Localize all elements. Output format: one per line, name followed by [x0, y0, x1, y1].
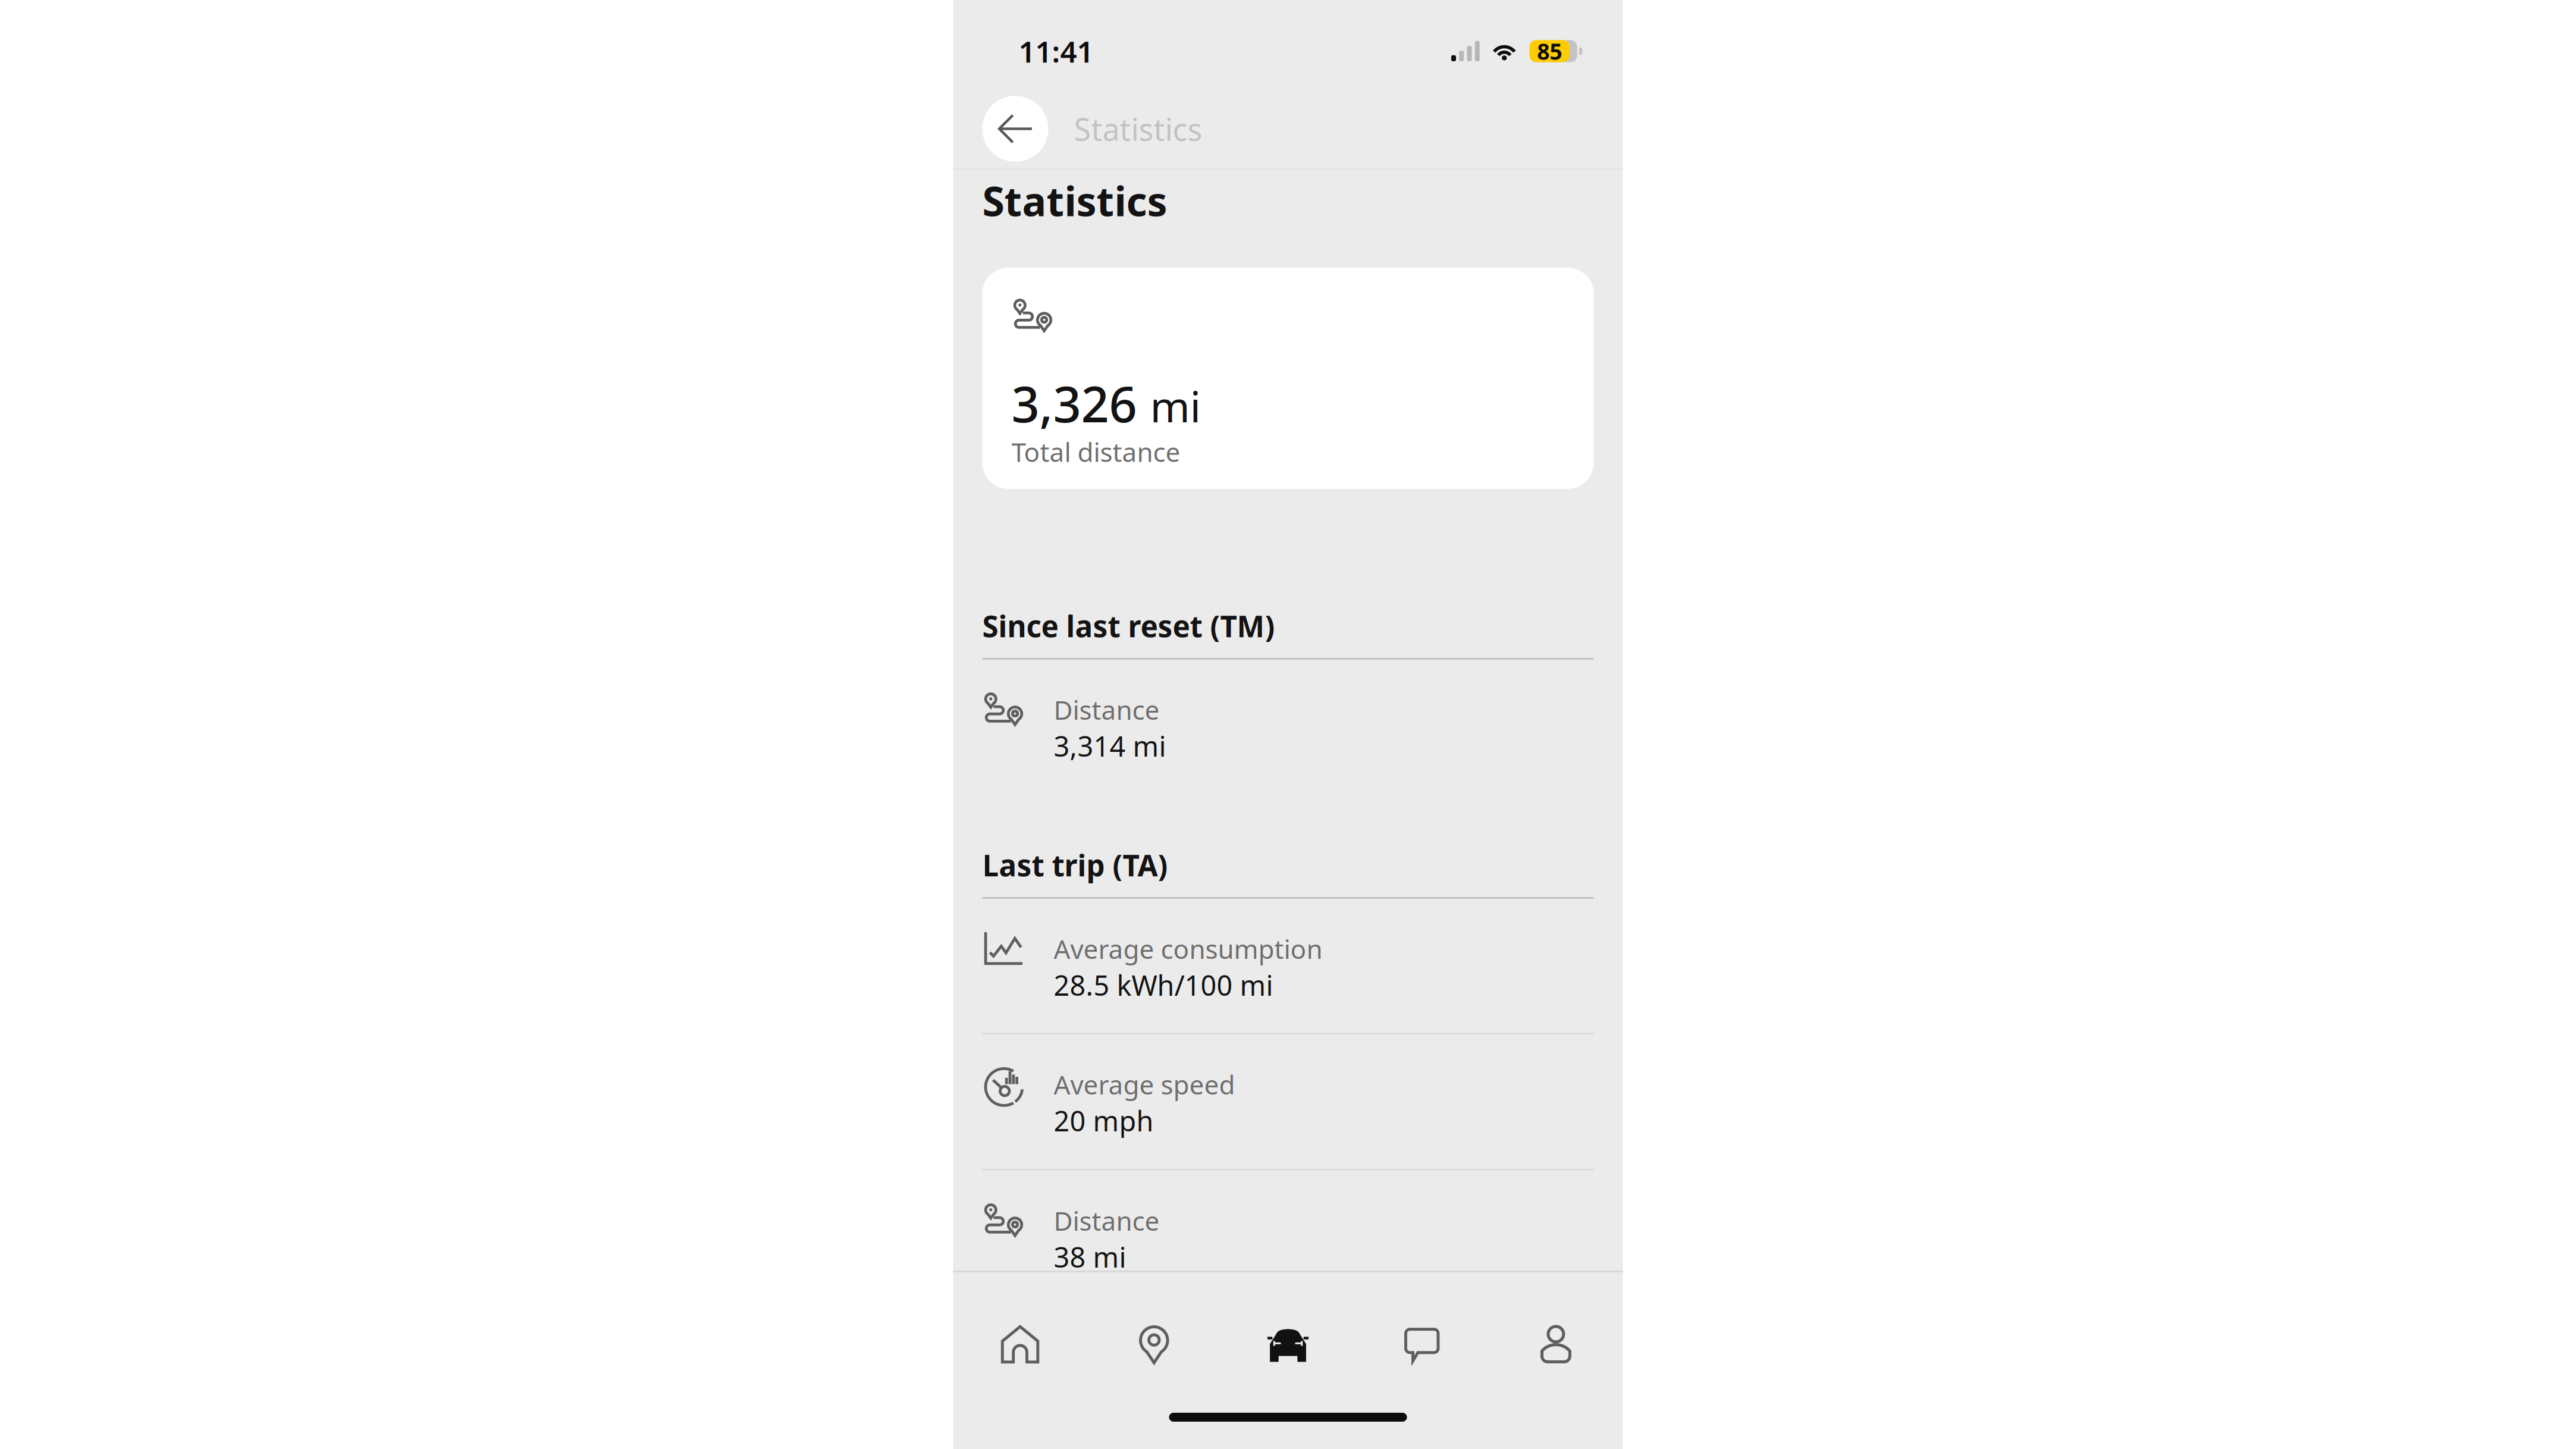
staticText: Distance	[1054, 692, 1160, 727]
staticText: Last trip (TA)	[982, 845, 1168, 884]
staticText: Statistics	[1074, 108, 1202, 149]
button[interactable]: Messages	[1355, 1303, 1489, 1385]
staticText: 3,326	[1011, 371, 1137, 436]
staticText: Average consumption	[1054, 931, 1322, 966]
staticText: mi	[1150, 377, 1201, 434]
staticText: 11:41	[1019, 32, 1094, 71]
staticText: Statistics	[982, 174, 1167, 227]
staticText: Since last reset (TM)	[982, 606, 1275, 645]
staticText: Distance	[1054, 1203, 1160, 1238]
staticText: Total distance	[1011, 434, 1180, 469]
button[interactable]: Profile	[1489, 1303, 1623, 1385]
button[interactable]: Locations	[1087, 1303, 1221, 1385]
button[interactable]: Back	[982, 96, 1048, 162]
staticText: 85	[1537, 36, 1562, 66]
button[interactable]: Home	[953, 1303, 1087, 1385]
staticText: Average speed	[1054, 1067, 1235, 1102]
button[interactable]: Vehicle	[1221, 1303, 1355, 1385]
staticText: 3,314 mi	[1054, 727, 1166, 764]
staticText: 20 mph	[1054, 1102, 1154, 1139]
staticText: 28.5 kWh/100 mi	[1054, 967, 1273, 1003]
staticText: 38 mi	[1054, 1238, 1126, 1275]
